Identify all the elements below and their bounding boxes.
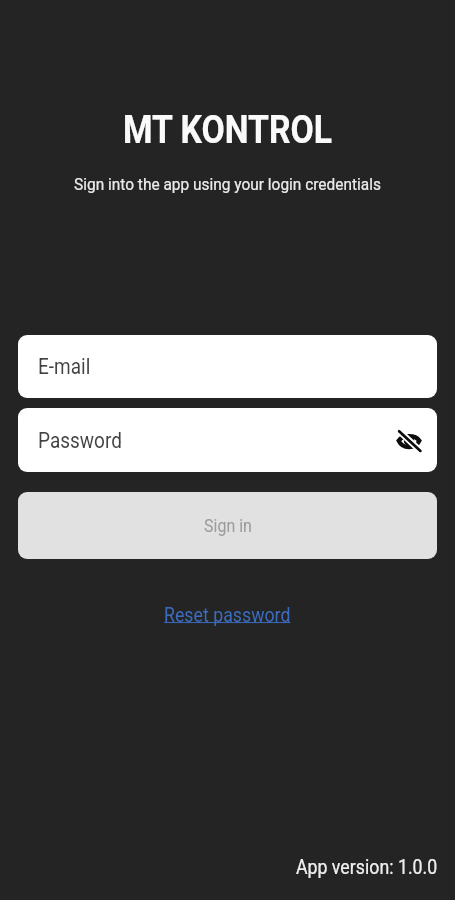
staticText: MT KONTROL xyxy=(25,108,429,153)
button[interactable]: Show password xyxy=(391,422,427,458)
staticText: App version: 1.0.0 xyxy=(296,855,438,878)
button[interactable]: Password xyxy=(18,408,437,472)
staticText: E-mail xyxy=(38,354,90,379)
staticText: Password xyxy=(38,428,122,453)
staticText: Reset password xyxy=(164,603,291,626)
staticText: Sign into the app using your login crede… xyxy=(25,174,429,194)
button[interactable]: Reset password xyxy=(150,601,305,628)
button[interactable]: Sign in xyxy=(18,492,437,559)
staticText: Sign in xyxy=(204,515,252,536)
button[interactable]: E-mail xyxy=(18,335,437,398)
